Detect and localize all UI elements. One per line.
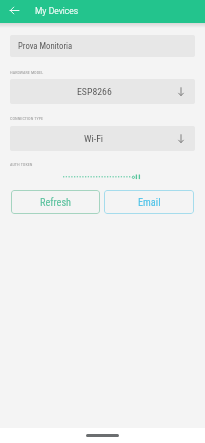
- button[interactable]: Back: [5, 1, 23, 19]
- button[interactable]: Home: [86, 434, 119, 437]
- staticText: HARDWARE MODEL: [10, 70, 44, 75]
- button[interactable]: ESP8266: [10, 79, 195, 104]
- button[interactable]: Wi-Fi: [10, 126, 195, 151]
- staticText: Refresh: [40, 196, 72, 208]
- button[interactable]: Prova Monitoria: [10, 35, 195, 57]
- staticText: AUTH TOKEN: [10, 162, 33, 167]
- staticText: My Devices: [35, 5, 79, 16]
- staticText: Prova Monitoria: [18, 41, 73, 51]
- staticText: Wi-Fi: [84, 133, 104, 144]
- button[interactable]: Refresh: [11, 190, 100, 214]
- staticText: ESP8266: [77, 86, 112, 97]
- staticText: Email: [138, 196, 161, 208]
- staticText: CONNECTION TYPE: [10, 116, 44, 121]
- button[interactable]: Email: [104, 190, 194, 214]
